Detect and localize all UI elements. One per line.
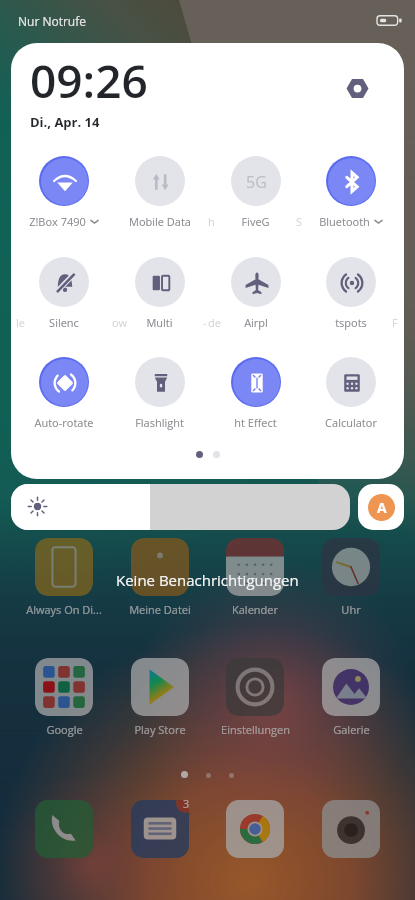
button[interactable]: Camera — [322, 800, 380, 858]
staticText: 3 — [183, 800, 189, 811]
staticText: le — [16, 315, 25, 330]
button[interactable]: Brightness — [11, 484, 350, 530]
staticText: ow — [112, 315, 128, 330]
staticText: 5G — [246, 171, 267, 193]
staticText: Calculator — [325, 415, 377, 430]
button[interactable]: Einstellungen — [217, 658, 293, 737]
button[interactable]: Bluetooth — [303, 156, 398, 229]
staticText: Flashlight — [135, 415, 184, 430]
staticText: S — [296, 214, 303, 229]
staticText: Airpl — [244, 315, 268, 330]
staticText: Silenc — [49, 315, 79, 330]
button[interactable]: ht Effect — [208, 357, 303, 430]
button[interactable]: Chrome — [226, 800, 284, 858]
button[interactable]: Phone — [35, 800, 93, 858]
button[interactable]: ow — [112, 257, 207, 330]
button[interactable]: Auto-rotate — [16, 357, 111, 430]
staticText: Nur Notrufe — [18, 13, 86, 29]
staticText: Einstellungen — [221, 722, 290, 737]
staticText: ht Effect — [234, 415, 277, 430]
button[interactable]: Uhr — [313, 538, 389, 617]
button[interactable]: Settings — [342, 73, 372, 103]
staticText: Bluetooth — [319, 214, 370, 229]
button[interactable]: le — [16, 257, 111, 330]
button[interactable]: Auto brightness — [358, 484, 404, 530]
button[interactable]: 5G — [208, 156, 303, 229]
staticText: Uhr — [341, 602, 361, 617]
staticText: tspots — [335, 315, 367, 330]
staticText: FiveG — [241, 214, 270, 229]
button[interactable]: Messages — [131, 800, 189, 858]
staticText: - — [203, 315, 207, 330]
button[interactable]: de — [208, 257, 303, 330]
staticText: A — [377, 498, 387, 517]
staticText: Google — [46, 722, 83, 737]
button[interactable]: Play Store — [122, 658, 198, 737]
button[interactable]: Mobile Data — [112, 156, 207, 229]
button[interactable]: Google — [26, 658, 102, 737]
staticText: 09:26 — [30, 49, 148, 112]
staticText: Mobile Data — [129, 214, 191, 229]
staticText: F — [392, 315, 398, 330]
staticText: Always On Di... — [26, 602, 102, 617]
button[interactable]: F — [303, 257, 398, 330]
staticText: Galerie — [333, 722, 370, 737]
staticText: de — [208, 315, 221, 330]
button[interactable]: Kalender — [217, 538, 293, 617]
button[interactable]: Galerie — [313, 658, 389, 737]
staticText: Keine Benachrichtigungen — [116, 570, 299, 590]
staticText: h — [208, 214, 215, 229]
button[interactable]: Meine Datei — [122, 538, 198, 617]
button[interactable]: Flashlight — [112, 357, 207, 430]
staticText: Play Store — [134, 722, 186, 737]
button[interactable]: Calculator — [303, 357, 398, 430]
staticText: Kalender — [232, 602, 278, 617]
button[interactable]: Always On Di... — [26, 538, 102, 617]
staticText: Auto-rotate — [34, 415, 94, 430]
button[interactable]: Z!Box 7490 — [16, 156, 111, 229]
staticText: Z!Box 7490 — [29, 214, 86, 229]
staticText: Di., Apr. 14 — [30, 113, 100, 131]
staticText: Meine Datei — [129, 602, 191, 617]
staticText: Multi — [146, 315, 173, 330]
